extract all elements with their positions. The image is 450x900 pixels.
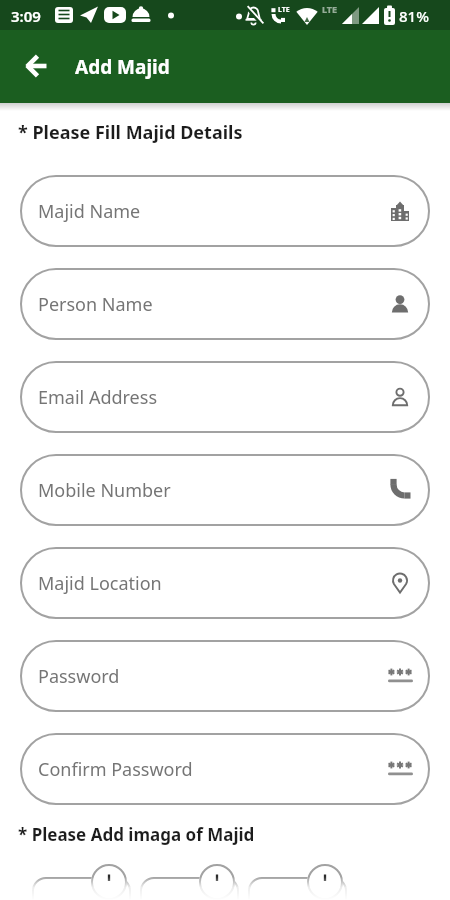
staticText: 3:09 [11, 6, 41, 26]
staticText: Majid Location [38, 571, 162, 596]
staticText: Add Majid [75, 54, 170, 80]
staticText: Majid Name [38, 199, 141, 224]
staticText: Password [38, 664, 120, 689]
staticText: 81% [399, 6, 429, 26]
staticText: Email Address [38, 385, 158, 410]
staticText: * Please Fill Majid Details [18, 120, 243, 145]
staticText: * Please Add imaga of Majid [18, 823, 255, 846]
staticText: LTE [278, 5, 290, 15]
staticText: Person Name [38, 292, 153, 317]
staticText: Confirm Password [38, 757, 193, 782]
staticText: Mobile Number [38, 478, 171, 503]
staticText: LTE [322, 3, 338, 15]
